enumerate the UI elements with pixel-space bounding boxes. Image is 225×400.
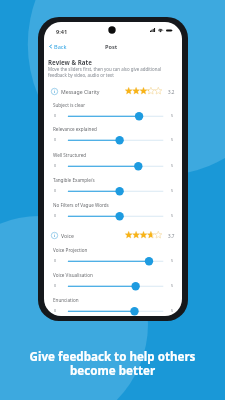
- staticText: 5: [171, 163, 174, 168]
- staticText: 5: [171, 283, 174, 288]
- button[interactable]: Subject is clear: [44, 102, 182, 124]
- button[interactable]: Back: [46, 41, 70, 52]
- staticText: 0: [54, 213, 57, 218]
- staticText: Move the sliders first, then you can als…: [48, 66, 162, 79]
- staticText: 9:41: [56, 28, 68, 36]
- staticText: Well Structured: [53, 152, 87, 158]
- staticText: Voice: [61, 232, 74, 239]
- staticText: 0: [54, 258, 57, 263]
- staticText: 5: [171, 113, 174, 118]
- staticText: Message Clarity: [61, 88, 100, 95]
- staticText: Enunciation: [53, 297, 79, 303]
- other: Info: [51, 88, 58, 95]
- staticText: 0: [54, 163, 57, 168]
- staticText: Back: [54, 43, 67, 51]
- staticText: No Filters of Vague Words: [53, 202, 109, 208]
- staticText: 5: [171, 188, 174, 193]
- staticText: 0: [54, 308, 57, 313]
- button[interactable]: Info: [44, 85, 182, 97]
- staticText: 5: [171, 213, 174, 218]
- button[interactable]: Enunciation: [44, 297, 182, 316]
- staticText: Subject is clear: [53, 102, 86, 108]
- button[interactable]: No Filters of Vague Words: [44, 202, 182, 224]
- button[interactable]: Tangible Example/s: [44, 177, 182, 199]
- staticText: 5: [171, 258, 174, 263]
- staticText: Tangible Example/s: [53, 177, 95, 183]
- button[interactable]: Well Structured: [44, 152, 182, 174]
- staticText: Voice Visualisation: [53, 272, 93, 278]
- other: Info: [51, 232, 58, 239]
- button[interactable]: Voice Projection: [44, 247, 182, 269]
- staticText: 3.2: [168, 89, 175, 95]
- staticText: 5: [171, 137, 174, 142]
- staticText: 0: [54, 137, 57, 142]
- staticText: Give feedback to help others become bett…: [0, 349, 225, 378]
- staticText: 0: [54, 188, 57, 193]
- staticText: Voice Projection: [53, 247, 88, 253]
- staticText: 0: [54, 113, 57, 118]
- staticText: Review & Rate: [48, 58, 92, 66]
- staticText: Post: [105, 43, 118, 51]
- staticText: 0: [54, 283, 57, 288]
- button[interactable]: Info: [44, 229, 182, 241]
- staticText: 5: [171, 308, 174, 313]
- button[interactable]: Relevance explained: [44, 126, 182, 148]
- staticText: Relevance explained: [53, 126, 97, 132]
- button[interactable]: Voice Visualisation: [44, 272, 182, 294]
- staticText: 3.7: [168, 233, 175, 239]
